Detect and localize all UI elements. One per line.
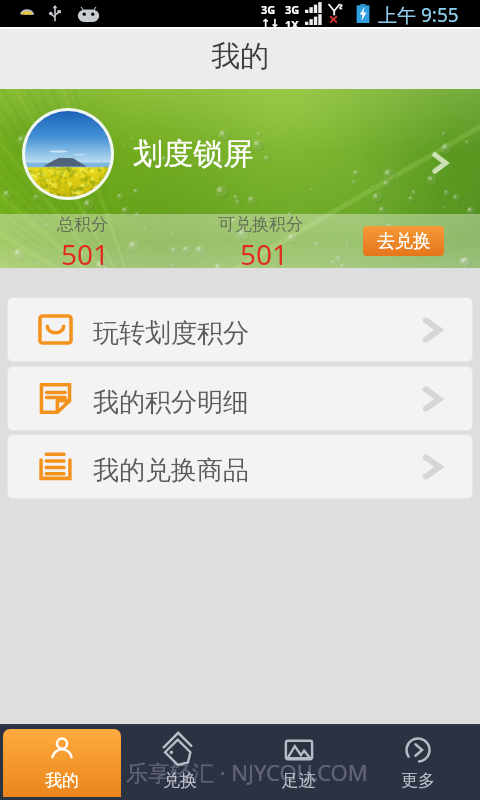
staticText: 划度锁屏 bbox=[133, 135, 253, 173]
button[interactable]: 我的兑换商品 bbox=[8, 435, 472, 498]
staticText: 501 bbox=[61, 235, 110, 268]
button[interactable]: 兑换 bbox=[121, 729, 239, 797]
button[interactable]: 进入 bbox=[424, 147, 456, 179]
button[interactable]: 我的 bbox=[3, 729, 121, 797]
staticText: 兑换 bbox=[163, 770, 197, 791]
button[interactable]: 足迹 bbox=[239, 729, 358, 797]
staticText: 总积分 bbox=[57, 214, 108, 235]
button[interactable]: 头像 bbox=[25, 111, 111, 197]
staticText: 可兑换积分 bbox=[218, 214, 303, 235]
button[interactable]: 玩转划度积分 bbox=[8, 298, 472, 361]
staticText: 乐享轻汇 · NJYCOU.COM bbox=[126, 757, 368, 787]
staticText: 501 bbox=[240, 235, 289, 268]
staticText: ↑↓ bbox=[261, 17, 280, 29]
staticText: 更多 bbox=[401, 770, 435, 791]
staticText: 我的积分明细 bbox=[93, 386, 249, 419]
button[interactable]: 更多 bbox=[358, 729, 477, 797]
staticText: 我的兑换商品 bbox=[93, 454, 249, 487]
staticText: 我的 bbox=[45, 770, 79, 791]
staticText: 上午 9:55 bbox=[378, 2, 459, 28]
staticText: 足迹 bbox=[282, 770, 316, 791]
staticText: 1X bbox=[285, 17, 299, 29]
button[interactable]: 去兑换 bbox=[363, 226, 444, 256]
button[interactable]: 我的积分明细 bbox=[8, 367, 472, 430]
staticText: 玩转划度积分 bbox=[93, 317, 249, 350]
staticText: 我的 bbox=[211, 38, 269, 75]
staticText: 去兑换 bbox=[377, 230, 431, 253]
staticText: 3G bbox=[261, 2, 276, 17]
staticText: 3G bbox=[285, 2, 300, 17]
